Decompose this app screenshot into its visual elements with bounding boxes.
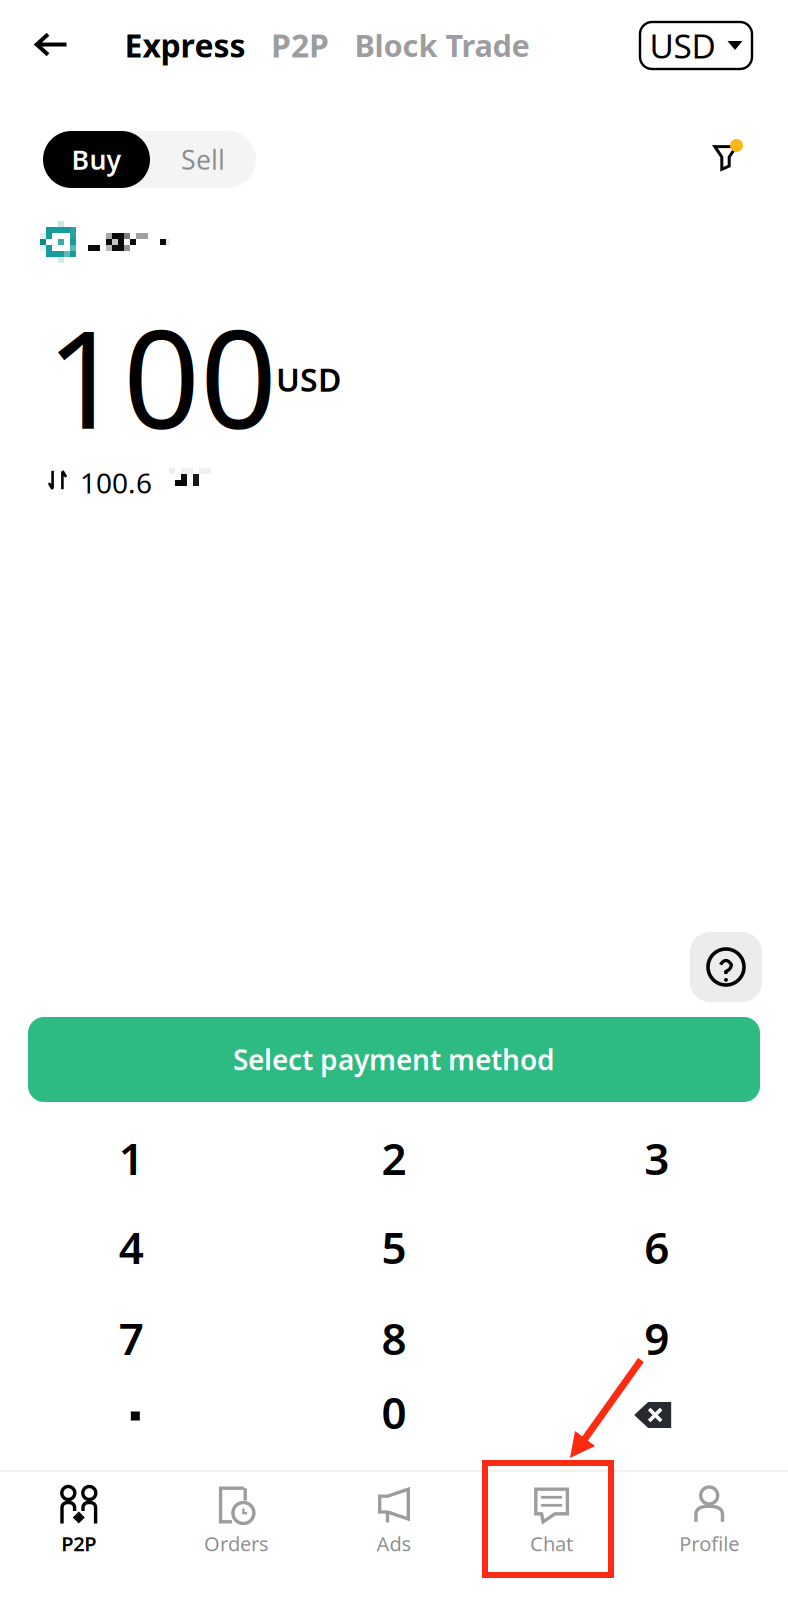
staticText: Profile (679, 1530, 739, 1557)
staticText: 6 (644, 1218, 669, 1276)
staticText: Buy (71, 142, 121, 177)
button[interactable]: 7 (0, 1296, 263, 1380)
button[interactable]: 1 (0, 1116, 263, 1200)
button[interactable]: Profile (630, 1458, 788, 1600)
staticText: 3 (644, 1129, 669, 1187)
button[interactable]: Filter (713, 138, 773, 198)
button[interactable]: USD (640, 22, 752, 69)
button[interactable]: Buy (43, 131, 150, 188)
button[interactable]: Select payment method (28, 1017, 760, 1102)
staticText: 0 (381, 1383, 406, 1441)
staticText: 2 (381, 1129, 406, 1187)
button[interactable]: 8 (263, 1296, 525, 1380)
staticText: 7 (119, 1309, 144, 1367)
button[interactable]: P2P (0, 1458, 158, 1600)
button[interactable]: Sell (150, 131, 256, 188)
button[interactable]: Delete (525, 1370, 788, 1454)
staticText: USD (649, 23, 715, 68)
staticText: Block Trade (354, 25, 529, 65)
button[interactable]: Ads (315, 1458, 473, 1600)
button[interactable]: Help (690, 932, 762, 1002)
staticText: 8 (381, 1309, 406, 1367)
staticText: Select payment method (233, 1041, 555, 1078)
staticText: USD (276, 358, 341, 400)
button[interactable]: 4 (0, 1205, 263, 1289)
staticText: Express (124, 24, 245, 66)
button[interactable]: Block Trade (347, 17, 537, 73)
staticText: 1 (119, 1129, 144, 1187)
button[interactable]: Back (18, 15, 84, 75)
button[interactable]: 2 (263, 1116, 525, 1200)
staticText: Ads (376, 1530, 411, 1557)
staticText: Orders (204, 1530, 269, 1557)
staticText: 9 (644, 1309, 669, 1367)
button[interactable]: Decimal point (0, 1370, 263, 1454)
staticText: P2P (61, 1530, 96, 1557)
button[interactable]: 9 (525, 1296, 788, 1380)
button[interactable]: 5 (263, 1205, 525, 1289)
button[interactable]: 6 (525, 1205, 788, 1289)
staticText: P2P (271, 24, 329, 66)
button[interactable]: Express (120, 17, 250, 73)
staticText: 100 (46, 287, 277, 466)
staticText: 100.6 (80, 464, 152, 501)
staticText: Sell (181, 142, 225, 177)
button[interactable]: 0 (263, 1370, 525, 1454)
button[interactable]: Orders (158, 1458, 315, 1600)
staticText: 5 (381, 1218, 406, 1276)
button[interactable]: Chat (473, 1458, 630, 1600)
button[interactable]: P2P (263, 17, 337, 73)
staticText: 4 (119, 1218, 144, 1276)
staticText: Chat (530, 1530, 573, 1557)
button[interactable]: 3 (525, 1116, 788, 1200)
